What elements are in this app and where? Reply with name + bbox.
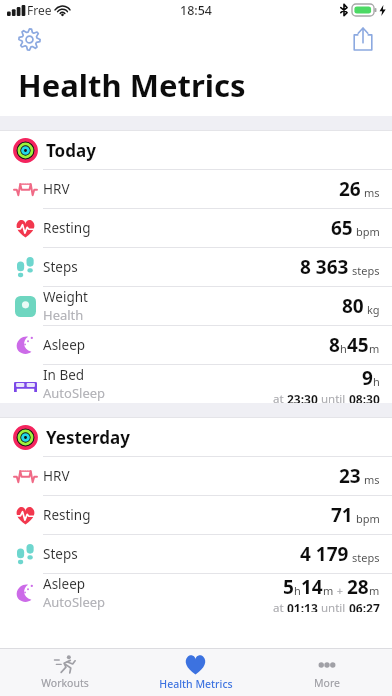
staticText: 8 bbox=[329, 332, 340, 358]
staticText: 08:30 bbox=[349, 391, 380, 403]
staticText: kg bbox=[367, 302, 380, 317]
staticText: bpm bbox=[356, 224, 380, 239]
staticText: 01:13 bbox=[287, 600, 318, 612]
staticText: AutoSleep bbox=[43, 384, 106, 402]
staticText: h bbox=[340, 341, 347, 356]
staticText: Workouts bbox=[41, 676, 89, 690]
staticText: HRV bbox=[43, 467, 70, 485]
staticText: steps bbox=[352, 263, 380, 278]
staticText: 28 bbox=[347, 574, 369, 600]
staticText: 23 bbox=[339, 463, 361, 489]
staticText: Steps bbox=[43, 545, 78, 563]
staticText: 23:30 bbox=[287, 391, 318, 403]
staticText: 9 bbox=[362, 365, 373, 391]
staticText: Weight bbox=[43, 288, 88, 306]
staticText: More bbox=[314, 676, 340, 690]
staticText: ms bbox=[364, 472, 380, 487]
staticText: at bbox=[273, 600, 287, 612]
staticText: Health Metrics bbox=[159, 677, 233, 691]
staticText: at bbox=[273, 391, 287, 403]
button[interactable]: Health Metrics bbox=[130, 649, 261, 696]
staticText: 4 179 bbox=[300, 541, 349, 567]
button[interactable]: Today bbox=[0, 131, 392, 169]
staticText: Health bbox=[43, 306, 84, 324]
staticText: until bbox=[318, 600, 349, 612]
staticText: m bbox=[369, 583, 380, 598]
staticText: Asleep bbox=[43, 575, 86, 593]
staticText: ms bbox=[364, 185, 380, 200]
staticText: 06:27 bbox=[349, 600, 380, 612]
staticText: Health Metrics bbox=[18, 64, 246, 106]
staticText: m bbox=[369, 341, 380, 356]
staticText: HRV bbox=[43, 180, 70, 198]
staticText: until bbox=[318, 391, 349, 403]
staticText: bpm bbox=[356, 511, 380, 526]
staticText: Today bbox=[46, 139, 96, 162]
button[interactable]: Weight bbox=[0, 287, 392, 325]
button[interactable]: Share bbox=[346, 22, 380, 56]
staticText: 5 bbox=[283, 574, 294, 600]
staticText: Asleep bbox=[43, 336, 86, 354]
staticText: Resting bbox=[43, 219, 91, 237]
button[interactable]: Resting bbox=[0, 209, 392, 247]
staticText: h bbox=[294, 583, 301, 598]
button[interactable]: Steps bbox=[0, 535, 392, 573]
staticText: 14 bbox=[301, 574, 323, 600]
button[interactable]: Resting bbox=[0, 496, 392, 534]
staticText: 45 bbox=[347, 332, 369, 358]
button[interactable]: HRV bbox=[0, 170, 392, 208]
staticText: + bbox=[334, 583, 347, 598]
button[interactable]: HRV bbox=[0, 457, 392, 495]
staticText: In Bed bbox=[43, 366, 85, 384]
staticText: 18:54 bbox=[180, 2, 213, 19]
button[interactable]: More bbox=[261, 649, 392, 696]
staticText: 80 bbox=[342, 293, 364, 319]
button[interactable]: Steps bbox=[0, 248, 392, 286]
button[interactable]: Settings bbox=[12, 22, 46, 56]
staticText: 71 bbox=[331, 502, 353, 528]
staticText: Resting bbox=[43, 506, 91, 524]
button[interactable]: Workouts bbox=[0, 649, 130, 696]
staticText: m bbox=[323, 583, 334, 598]
button[interactable]: In Bed bbox=[0, 365, 392, 403]
button[interactable]: Asleep bbox=[0, 326, 392, 364]
button[interactable]: Asleep bbox=[0, 574, 392, 612]
staticText: steps bbox=[352, 550, 380, 565]
staticText: Free bbox=[27, 2, 52, 18]
staticText: h bbox=[373, 374, 380, 389]
staticText: Steps bbox=[43, 258, 78, 276]
staticText: 65 bbox=[331, 215, 353, 241]
staticText: 26 bbox=[339, 176, 361, 202]
staticText: 8 363 bbox=[300, 254, 349, 280]
button[interactable]: Yesterday bbox=[0, 418, 392, 456]
staticText: AutoSleep bbox=[43, 593, 106, 611]
staticText: Yesterday bbox=[46, 426, 130, 449]
